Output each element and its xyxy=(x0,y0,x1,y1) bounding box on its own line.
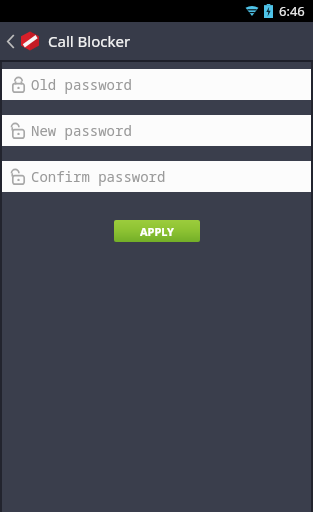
staticText: APPLY xyxy=(140,224,174,239)
staticText: Call Blocker xyxy=(48,31,131,51)
staticText: New password xyxy=(31,121,132,140)
button[interactable]: APPLY xyxy=(114,220,200,242)
staticText: 6:46 xyxy=(279,2,305,20)
other: Back xyxy=(4,29,18,53)
button[interactable]: Old password xyxy=(2,69,311,100)
staticText: Confirm password xyxy=(31,167,166,186)
staticText: Old password xyxy=(31,75,132,94)
button[interactable]: New password xyxy=(2,115,311,146)
button[interactable]: Back xyxy=(0,22,313,60)
button[interactable]: Confirm password xyxy=(2,161,311,192)
